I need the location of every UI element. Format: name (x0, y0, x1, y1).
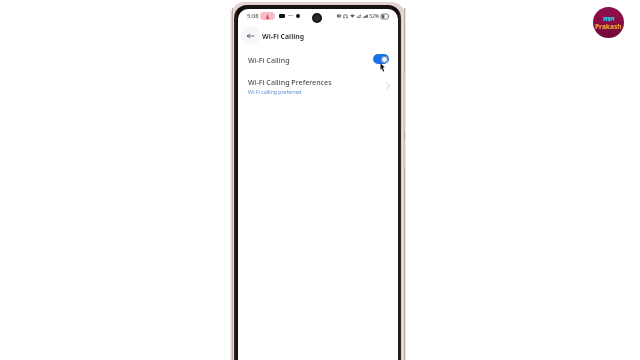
staticText: Wi-Fi Calling Preferences (248, 77, 332, 87)
staticText: 32% (369, 13, 380, 19)
staticText: Wi-Fi Calling (248, 55, 290, 65)
button[interactable]: Wi-Fi Calling Preferences (238, 73, 398, 99)
staticText: Prakash (595, 22, 622, 31)
staticText: Wi-Fi calling preferred (248, 88, 302, 95)
button[interactable]: Back (241, 26, 260, 45)
staticText: लक्ष्य (603, 14, 615, 22)
staticText: Wi-Fi Calling (262, 32, 305, 41)
button[interactable]: Wi-Fi Calling (238, 48, 398, 70)
other: Wi-Fi Calling switch, on (373, 54, 389, 64)
staticText: 5:08 (247, 12, 259, 20)
